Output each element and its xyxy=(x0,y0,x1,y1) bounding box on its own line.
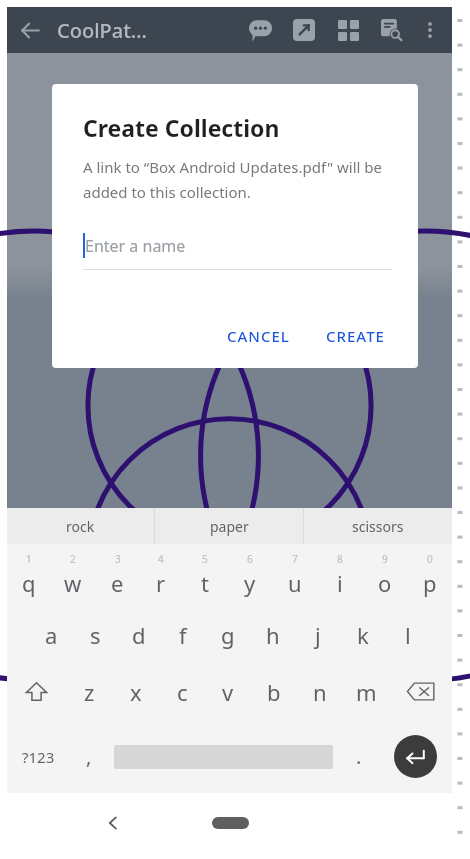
staticText: 7 xyxy=(292,552,298,566)
staticText: . xyxy=(356,743,362,770)
button[interactable]: h xyxy=(250,606,295,663)
staticText: rock xyxy=(66,517,95,536)
button[interactable]: 9 xyxy=(362,544,407,606)
staticText: 9 xyxy=(382,552,388,566)
button[interactable]: d xyxy=(117,606,161,663)
button[interactable]: 5 xyxy=(183,544,227,606)
button[interactable]: ?123 xyxy=(7,720,69,793)
staticText: p xyxy=(423,568,437,598)
staticText: u xyxy=(288,568,302,598)
button[interactable]: Open externally xyxy=(282,7,326,53)
staticText: m xyxy=(356,677,377,707)
staticText: w xyxy=(64,568,82,598)
staticText: s xyxy=(90,620,101,650)
staticText: CREATE xyxy=(326,326,385,346)
button[interactable]: 4 xyxy=(139,544,183,606)
button[interactable]: rock xyxy=(7,508,154,544)
staticText: r xyxy=(156,568,166,598)
staticText: o xyxy=(378,568,392,598)
button[interactable]: . xyxy=(339,720,378,793)
staticText: i xyxy=(337,568,343,598)
button[interactable]: s xyxy=(73,606,117,663)
staticText: t xyxy=(201,568,209,598)
button[interactable]: l xyxy=(385,606,430,663)
button[interactable]: k xyxy=(340,606,385,663)
button[interactable]: g xyxy=(205,606,250,663)
button[interactable]: f xyxy=(161,606,205,663)
button[interactable]: 6 xyxy=(227,544,272,606)
staticText: j xyxy=(315,620,321,650)
staticText: n xyxy=(313,677,327,707)
button[interactable]: Backspace xyxy=(389,663,452,720)
staticText: b xyxy=(267,677,281,707)
button[interactable]: b xyxy=(251,663,297,720)
button[interactable]: Space xyxy=(108,720,339,793)
button[interactable]: 1 xyxy=(7,544,51,606)
button[interactable]: Shift xyxy=(7,663,66,720)
staticText: x xyxy=(130,677,142,707)
button[interactable]: x xyxy=(113,663,159,720)
staticText: 8 xyxy=(337,552,343,566)
button[interactable]: 3 xyxy=(95,544,139,606)
button[interactable]: Home xyxy=(198,799,262,847)
button[interactable]: CANCEL xyxy=(220,320,297,352)
staticText: ?123 xyxy=(22,747,55,767)
staticText: CoolPat… xyxy=(57,17,148,44)
button[interactable]: n xyxy=(297,663,343,720)
staticText: 2 xyxy=(70,552,76,566)
staticText: 5 xyxy=(202,552,208,566)
staticText: v xyxy=(222,677,234,707)
button[interactable]: , xyxy=(69,720,108,793)
staticText: z xyxy=(84,677,95,707)
button[interactable]: Grid view xyxy=(326,7,370,53)
staticText: c xyxy=(177,677,188,707)
staticText: A link to “Box Android Updates.pdf" will… xyxy=(83,157,392,202)
button[interactable]: j xyxy=(295,606,340,663)
staticText: a xyxy=(45,620,58,650)
button[interactable]: Back xyxy=(89,799,137,847)
staticText: paper xyxy=(210,517,249,536)
button[interactable]: Comments xyxy=(238,7,282,53)
staticText: k xyxy=(357,620,369,650)
staticText: 0 xyxy=(427,552,433,566)
staticText: scissors xyxy=(352,517,404,536)
staticText: d xyxy=(132,620,146,650)
staticText: CANCEL xyxy=(227,326,290,346)
button[interactable]: scissors xyxy=(304,508,452,544)
staticText: Create Collection xyxy=(83,112,280,143)
button[interactable]: Enter xyxy=(378,720,452,793)
button[interactable]: 8 xyxy=(317,544,362,606)
button[interactable]: 0 xyxy=(407,544,452,606)
button[interactable]: c xyxy=(159,663,205,720)
button[interactable]: Back xyxy=(7,7,53,53)
button[interactable]: 7 xyxy=(272,544,317,606)
staticText: f xyxy=(179,620,187,650)
button[interactable]: More options xyxy=(414,7,446,53)
staticText: e xyxy=(111,568,124,598)
staticText: 3 xyxy=(115,552,121,566)
staticText: g xyxy=(221,620,235,650)
button[interactable]: z xyxy=(66,663,113,720)
button[interactable]: v xyxy=(205,663,251,720)
staticText: h xyxy=(266,620,280,650)
button[interactable]: CREATE xyxy=(319,320,392,352)
button[interactable]: Search document xyxy=(370,7,414,53)
staticText: y xyxy=(244,568,256,598)
button[interactable]: a xyxy=(29,606,73,663)
staticText: 4 xyxy=(158,552,164,566)
button[interactable]: 2 xyxy=(51,544,95,606)
staticText: 1 xyxy=(26,552,32,566)
button[interactable]: m xyxy=(343,663,389,720)
staticText: l xyxy=(405,620,411,650)
staticText: 6 xyxy=(247,552,253,566)
button[interactable]: paper xyxy=(155,508,303,544)
staticText: Enter a name xyxy=(85,235,186,257)
staticText: q xyxy=(22,568,36,598)
staticText: , xyxy=(86,743,92,770)
